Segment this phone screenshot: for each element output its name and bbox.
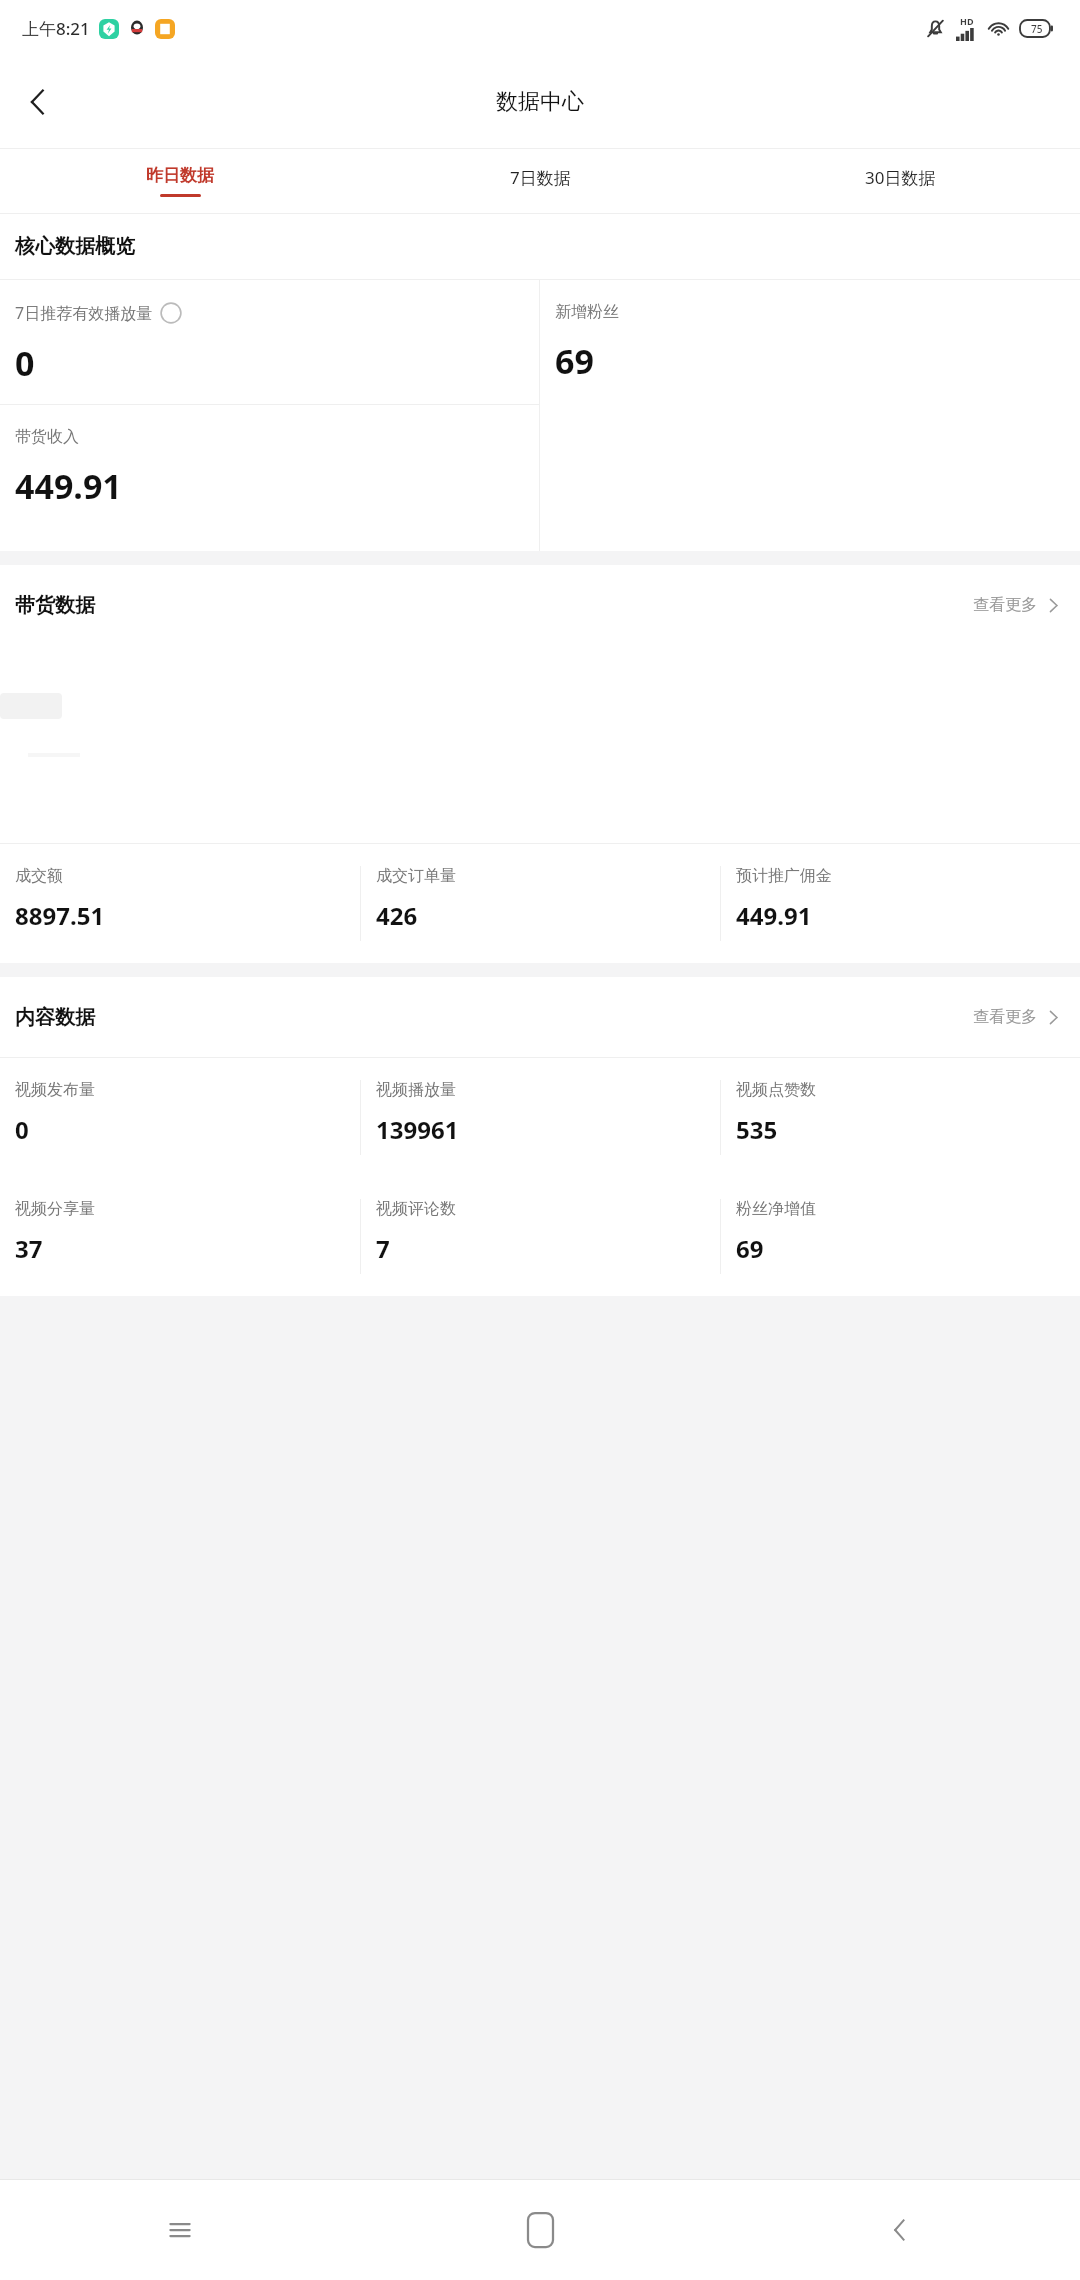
staticText: 预计推广佣金 bbox=[736, 866, 832, 886]
staticText: 69 bbox=[555, 338, 594, 384]
staticText: 成交额 bbox=[15, 866, 63, 886]
staticText: 30日数据 bbox=[865, 166, 936, 189]
staticText: 7日推荐有效播放量 bbox=[15, 302, 153, 324]
button[interactable]: 查看更多 bbox=[957, 585, 1080, 625]
button[interactable]: 成交额 bbox=[0, 844, 360, 963]
button[interactable]: 视频播放量 bbox=[361, 1058, 720, 1177]
staticText: 带货收入 bbox=[15, 427, 79, 447]
button[interactable]: 昨日数据 bbox=[0, 149, 360, 213]
staticText: 0 bbox=[15, 1113, 29, 1146]
button[interactable]: 视频评论数 bbox=[361, 1177, 720, 1296]
staticText: 昨日数据 bbox=[146, 165, 214, 186]
button[interactable]: 最近任务 bbox=[0, 2180, 360, 2280]
staticText: 139961 bbox=[376, 1113, 459, 1146]
staticText: 上午8:21 bbox=[22, 17, 90, 40]
staticText: 535 bbox=[736, 1113, 778, 1146]
button[interactable]: 30日数据 bbox=[720, 149, 1080, 213]
staticText: 数据中心 bbox=[496, 88, 584, 116]
staticText: 内容数据 bbox=[15, 1005, 95, 1030]
staticText: 0 bbox=[15, 340, 35, 386]
staticText: 视频评论数 bbox=[376, 1199, 456, 1219]
staticText: 69 bbox=[736, 1232, 764, 1265]
button[interactable]: 视频点赞数 bbox=[721, 1058, 1080, 1177]
button[interactable]: 返回 bbox=[720, 2180, 1080, 2280]
button[interactable]: 视频分享量 bbox=[0, 1177, 360, 1296]
button[interactable]: 粉丝净增值 bbox=[721, 1177, 1080, 1296]
button[interactable]: 7日推荐有效播放量 bbox=[0, 280, 539, 404]
button[interactable]: 新增粉丝 bbox=[540, 280, 1080, 404]
button[interactable]: 查看更多 bbox=[957, 997, 1080, 1037]
staticText: 查看更多 bbox=[973, 595, 1037, 615]
button[interactable]: 7日数据 bbox=[360, 149, 720, 213]
staticText: 7 bbox=[376, 1232, 390, 1265]
button[interactable]: 返回 bbox=[10, 74, 66, 130]
staticText: 视频播放量 bbox=[376, 1080, 456, 1100]
button[interactable]: 成交订单量 bbox=[361, 844, 720, 963]
staticText: 查看更多 bbox=[973, 1007, 1037, 1027]
staticText: HD bbox=[960, 15, 974, 27]
staticText: 7日数据 bbox=[510, 166, 571, 189]
staticText: 视频分享量 bbox=[15, 1199, 95, 1219]
staticText: 449.91 bbox=[15, 463, 122, 509]
staticText: 成交订单量 bbox=[376, 866, 456, 886]
staticText: 426 bbox=[376, 899, 418, 932]
button[interactable]: 视频发布量 bbox=[0, 1058, 360, 1177]
staticText: 75 bbox=[1031, 22, 1043, 36]
staticText: 带货数据 bbox=[15, 593, 95, 618]
button[interactable]: 带货收入 bbox=[0, 405, 539, 551]
staticText: 核心数据概览 bbox=[15, 234, 135, 259]
staticText: 8897.51 bbox=[15, 899, 105, 932]
staticText: 449.91 bbox=[736, 899, 812, 932]
staticText: 视频点赞数 bbox=[736, 1080, 816, 1100]
staticText: 粉丝净增值 bbox=[736, 1199, 816, 1219]
staticText: 新增粉丝 bbox=[555, 302, 619, 322]
button[interactable]: 主页 bbox=[360, 2180, 720, 2280]
staticText: 37 bbox=[15, 1232, 43, 1265]
button[interactable]: 预计推广佣金 bbox=[721, 844, 1080, 963]
staticText: 视频发布量 bbox=[15, 1080, 95, 1100]
